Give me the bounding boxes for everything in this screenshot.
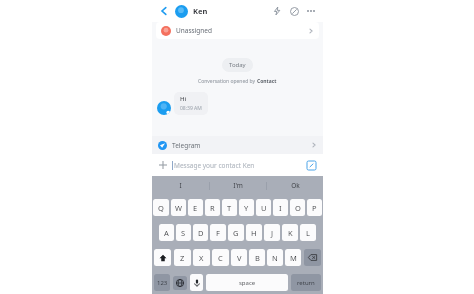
staticText: 08:39 AM	[180, 105, 202, 112]
staticText: U	[261, 203, 267, 213]
button[interactable]: R	[205, 199, 220, 216]
staticText: Today	[229, 61, 246, 69]
button[interactable]: S	[176, 224, 191, 241]
button[interactable]: J	[264, 224, 280, 241]
staticText: B	[255, 253, 260, 263]
staticText: E	[193, 203, 198, 213]
button[interactable]: Back	[157, 4, 171, 18]
staticText: F	[216, 228, 220, 238]
button[interactable]: Backspace	[304, 249, 321, 266]
staticText: return	[297, 279, 315, 287]
staticText: M	[290, 253, 297, 263]
button[interactable]: Voice input	[190, 274, 203, 291]
staticText: I'm	[233, 181, 243, 190]
button[interactable]: More options	[304, 4, 318, 18]
button[interactable]: Ok	[267, 176, 323, 195]
button[interactable]: K	[282, 224, 298, 241]
button[interactable]: D	[193, 224, 208, 241]
button[interactable]: Compose	[306, 160, 317, 171]
button[interactable]: Add attachment	[152, 154, 323, 176]
staticText: V	[237, 253, 242, 263]
button[interactable]: Shift	[154, 249, 171, 266]
staticText: Telegram	[172, 141, 201, 150]
button[interactable]: space	[206, 274, 288, 291]
staticText: I	[279, 203, 282, 213]
button[interactable]: return	[291, 274, 321, 291]
staticText: Ok	[291, 181, 300, 190]
button[interactable]: W	[171, 199, 186, 216]
button[interactable]: Unassigned	[156, 22, 319, 39]
staticText: G	[233, 228, 239, 238]
button[interactable]: L	[300, 224, 316, 241]
button[interactable]: H	[246, 224, 262, 241]
staticText: N	[272, 253, 278, 263]
staticText: C	[218, 253, 223, 263]
button[interactable]: T	[222, 199, 237, 216]
button[interactable]: I	[273, 199, 288, 216]
staticText: 123	[157, 279, 168, 287]
button[interactable]: G	[228, 224, 244, 241]
button[interactable]: E	[188, 199, 203, 216]
staticText: L	[306, 228, 310, 238]
button[interactable]: I	[152, 176, 209, 195]
button[interactable]: A	[159, 224, 174, 241]
staticText: S	[181, 228, 186, 238]
button[interactable]: Q	[153, 199, 169, 216]
staticText: H	[251, 228, 257, 238]
button[interactable]: O	[290, 199, 305, 216]
staticText: Unassigned	[176, 26, 212, 35]
staticText: K	[288, 228, 293, 238]
staticText: O	[295, 203, 301, 213]
staticText: Ken	[193, 6, 208, 16]
staticText: J	[271, 228, 274, 238]
staticText: T	[227, 203, 232, 213]
staticText: R	[210, 203, 215, 213]
staticText: Contact	[257, 78, 277, 85]
button[interactable]: U	[256, 199, 271, 216]
button[interactable]: M	[285, 249, 301, 266]
button[interactable]: F	[210, 224, 226, 241]
staticText: A	[164, 228, 169, 238]
button[interactable]: Quick replies	[270, 4, 284, 18]
staticText: Y	[244, 203, 249, 213]
staticText: Message your contact Ken	[174, 161, 255, 170]
staticText: D	[198, 228, 204, 238]
button[interactable]: Telegram	[152, 136, 323, 154]
staticText: Q	[158, 203, 164, 213]
staticText: Z	[180, 253, 185, 263]
other: Add attachment	[158, 160, 168, 170]
staticText: W	[175, 203, 182, 213]
button[interactable]: Change keyboard	[173, 276, 187, 290]
staticText: X	[199, 253, 204, 263]
staticText: Conversation opened by	[198, 78, 257, 85]
button[interactable]: P	[307, 199, 322, 216]
button[interactable]: Y	[239, 199, 254, 216]
button[interactable]: Z	[174, 249, 191, 266]
staticText: Hi	[180, 95, 187, 103]
button[interactable]: N	[267, 249, 283, 266]
staticText: space	[239, 279, 256, 287]
button[interactable]: 123	[154, 274, 170, 291]
button[interactable]: V	[231, 249, 247, 266]
staticText: I	[179, 181, 182, 190]
button[interactable]: C	[212, 249, 229, 266]
button[interactable]: B	[249, 249, 265, 266]
button[interactable]: I'm	[210, 176, 266, 195]
staticText: P	[312, 203, 317, 213]
button[interactable]: X	[193, 249, 210, 266]
button[interactable]: Resolve	[287, 4, 301, 18]
